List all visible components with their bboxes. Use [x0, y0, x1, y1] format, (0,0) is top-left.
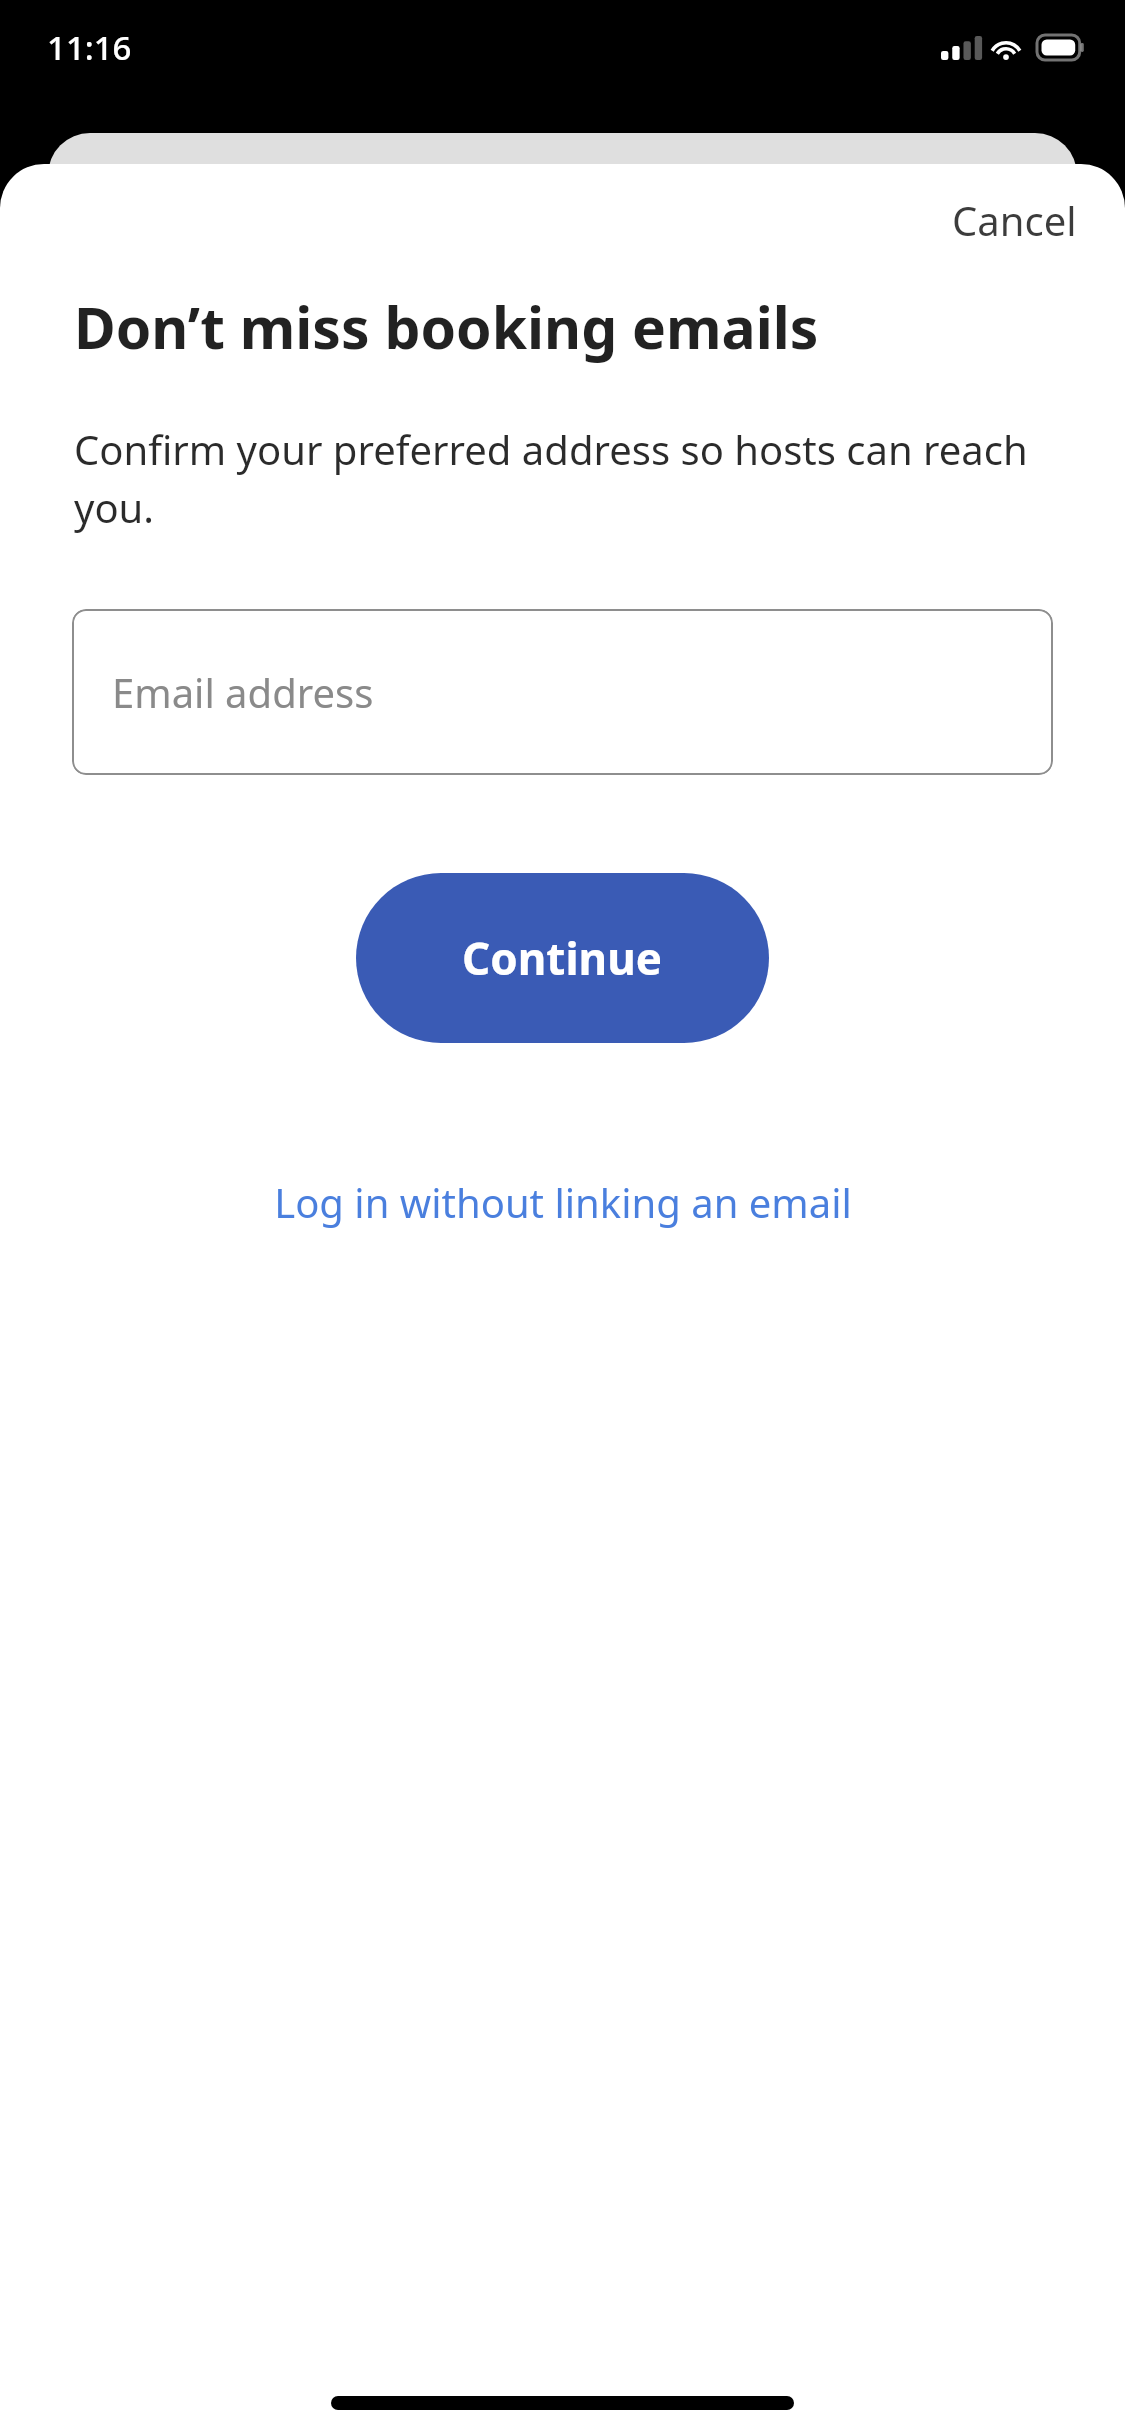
- staticText: Email address: [112, 665, 374, 719]
- button[interactable]: Email address: [72, 609, 1053, 775]
- staticText: Cancel: [952, 193, 1077, 247]
- staticText: 11:16: [47, 25, 132, 70]
- staticText: Don’t miss booking emails: [74, 288, 819, 366]
- staticText: Confirm your preferred address so hosts …: [74, 422, 1051, 535]
- staticText: Log in without linking an email: [274, 1175, 852, 1229]
- button[interactable]: Continue: [356, 873, 769, 1043]
- button[interactable]: Cancel: [904, 183, 1125, 257]
- button[interactable]: Log in without linking an email: [246, 1161, 880, 1243]
- staticText: Continue: [462, 928, 663, 988]
